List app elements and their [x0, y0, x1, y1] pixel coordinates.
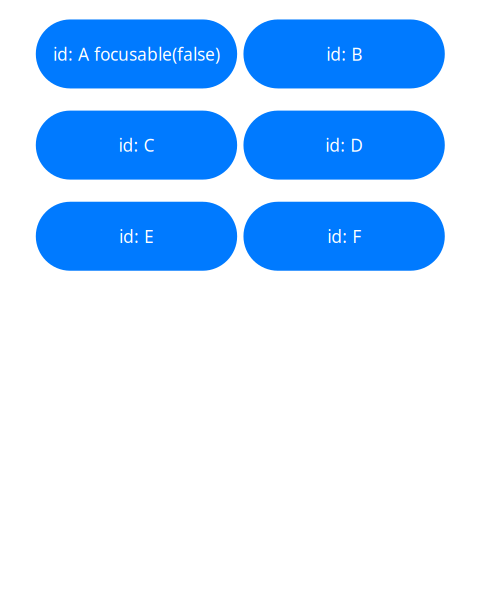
button[interactable]: id: A focusable(false): [36, 19, 237, 88]
staticText: id: C: [118, 134, 154, 157]
button[interactable]: id: E: [36, 202, 237, 271]
staticText: id: D: [325, 134, 363, 157]
staticText: id: F: [327, 225, 361, 248]
button[interactable]: id: D: [243, 111, 445, 180]
button[interactable]: id: F: [243, 202, 445, 271]
button[interactable]: id: C: [36, 111, 237, 180]
button[interactable]: id: B: [243, 19, 445, 88]
staticText: id: E: [119, 225, 154, 248]
staticText: id: B: [326, 42, 362, 65]
staticText: id: A focusable(false): [53, 42, 220, 65]
